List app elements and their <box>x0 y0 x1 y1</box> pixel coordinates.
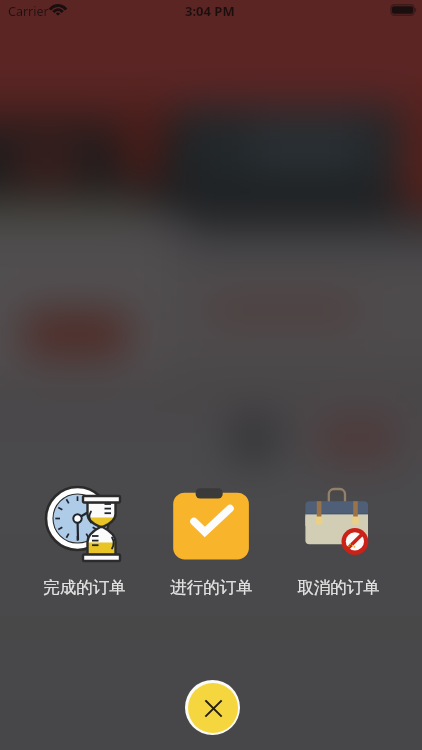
button[interactable]: 进行的订单 <box>157 476 265 600</box>
button[interactable]: 取消的订单 <box>284 476 392 600</box>
staticText: Carrier <box>8 3 49 20</box>
staticText: 进行的订单 <box>170 577 253 598</box>
staticText: 3:04 PM <box>185 2 235 20</box>
staticText: 完成的订单 <box>43 577 126 598</box>
staticText: 取消的订单 <box>297 577 380 598</box>
button[interactable]: 完成的订单 <box>30 476 138 600</box>
button[interactable]: Close <box>185 680 240 735</box>
